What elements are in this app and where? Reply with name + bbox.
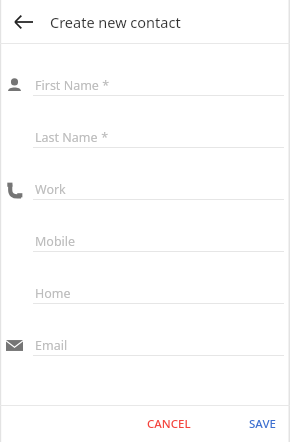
staticText: Last Name (35, 129, 98, 146)
button[interactable]: Email (0, 333, 290, 363)
staticText: Home (35, 285, 71, 302)
button[interactable]: SAVE (239, 409, 286, 439)
staticText: First Name (35, 77, 99, 94)
button[interactable]: First Name (0, 73, 290, 103)
staticText: Email (35, 337, 68, 354)
button[interactable]: Work (0, 177, 290, 207)
staticText: CANCEL (147, 416, 191, 432)
staticText: Create new contact (50, 12, 181, 32)
staticText: Mobile (35, 233, 76, 250)
button[interactable]: CANCEL (137, 409, 201, 439)
button[interactable]: Home (0, 281, 290, 311)
staticText: Work (35, 181, 66, 198)
staticText: * (98, 129, 109, 146)
button[interactable]: Last Name (0, 125, 290, 155)
button[interactable]: Back (9, 7, 39, 37)
staticText: * (99, 77, 110, 94)
button[interactable]: Mobile (0, 229, 290, 259)
staticText: SAVE (249, 416, 276, 432)
